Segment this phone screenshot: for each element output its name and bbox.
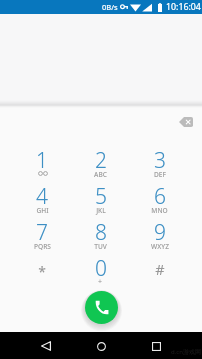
staticText: ABC — [94, 170, 107, 179]
staticText: 1 — [36, 146, 48, 175]
staticText: # — [155, 259, 165, 279]
staticText: 0 — [95, 254, 107, 283]
button[interactable]: # — [130, 250, 189, 286]
staticText: WXYZ — [151, 242, 169, 251]
button[interactable]: * — [13, 250, 71, 286]
staticText: 3 — [154, 146, 166, 175]
staticText: TUV — [94, 242, 107, 251]
staticText: 0B/s — [102, 2, 118, 12]
button[interactable]: Home — [91, 336, 111, 356]
staticText: 4 — [36, 182, 48, 211]
button[interactable]: 8 — [71, 214, 130, 250]
staticText: JKL — [96, 206, 106, 215]
staticText: + — [98, 277, 103, 287]
button[interactable]: 9 — [130, 214, 189, 250]
staticText: GHI — [36, 206, 49, 215]
staticText: 7 — [36, 218, 48, 247]
staticText: PQRS — [34, 242, 51, 251]
staticText: * — [38, 262, 46, 281]
staticText: 10:16:04 — [166, 1, 201, 13]
staticText: d.cn游戏网 — [171, 348, 201, 356]
button[interactable]: Recents — [146, 336, 166, 356]
button[interactable]: Call — [85, 291, 118, 324]
staticText: 8 — [95, 218, 107, 247]
staticText: MNO — [151, 206, 168, 215]
button[interactable]: Back — [36, 336, 56, 356]
button[interactable]: 3 — [130, 142, 189, 178]
button[interactable]: 0 — [71, 250, 130, 286]
staticText: 9 — [154, 218, 166, 247]
button[interactable]: 1 — [13, 142, 71, 178]
staticText: 2 — [95, 146, 107, 175]
button[interactable]: 6 — [130, 178, 189, 214]
staticText: DEF — [154, 170, 166, 179]
staticText: 5 — [95, 182, 107, 211]
button[interactable]: Delete — [179, 117, 193, 127]
button[interactable]: 2 — [71, 142, 130, 178]
button[interactable]: 7 — [13, 214, 71, 250]
button[interactable]: 5 — [71, 178, 130, 214]
staticText: 6 — [154, 182, 166, 211]
button[interactable]: 4 — [13, 178, 71, 214]
